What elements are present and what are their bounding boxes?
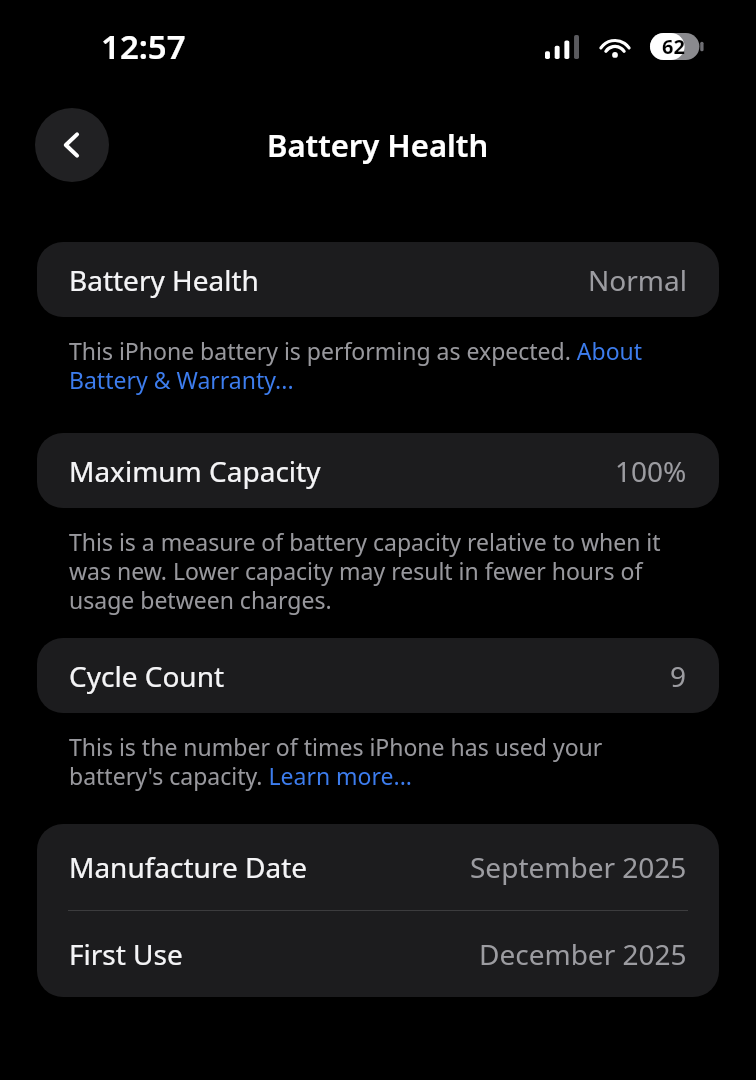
staticText: 12:57 <box>101 24 186 69</box>
button[interactable]: Battery Health <box>37 242 719 317</box>
staticText: 62 <box>662 33 685 60</box>
staticText: December 2025 <box>479 935 687 973</box>
staticText: Normal <box>588 261 687 299</box>
staticText: Cycle Count <box>69 657 225 695</box>
staticText: First Use <box>69 935 183 973</box>
button[interactable]: Maximum Capacity <box>37 433 719 508</box>
staticText: 100% <box>615 452 687 490</box>
staticText: Battery Health <box>69 261 259 299</box>
staticText: Battery Health <box>267 124 489 166</box>
button[interactable]: Back <box>35 108 109 182</box>
staticText: Maximum Capacity <box>69 452 321 490</box>
staticText: 9 <box>670 657 687 695</box>
staticText: September 2025 <box>470 848 687 886</box>
staticText: Manufacture Date <box>69 848 308 886</box>
button[interactable]: Cycle Count <box>37 638 719 713</box>
staticText: This is a measure of battery capacity re… <box>69 526 687 616</box>
staticText: This iPhone battery is performing as exp… <box>69 335 687 396</box>
staticText: This is the number of times iPhone has u… <box>69 731 687 792</box>
button[interactable]: First Use <box>37 911 719 997</box>
button[interactable]: Manufacture Date <box>37 824 719 910</box>
